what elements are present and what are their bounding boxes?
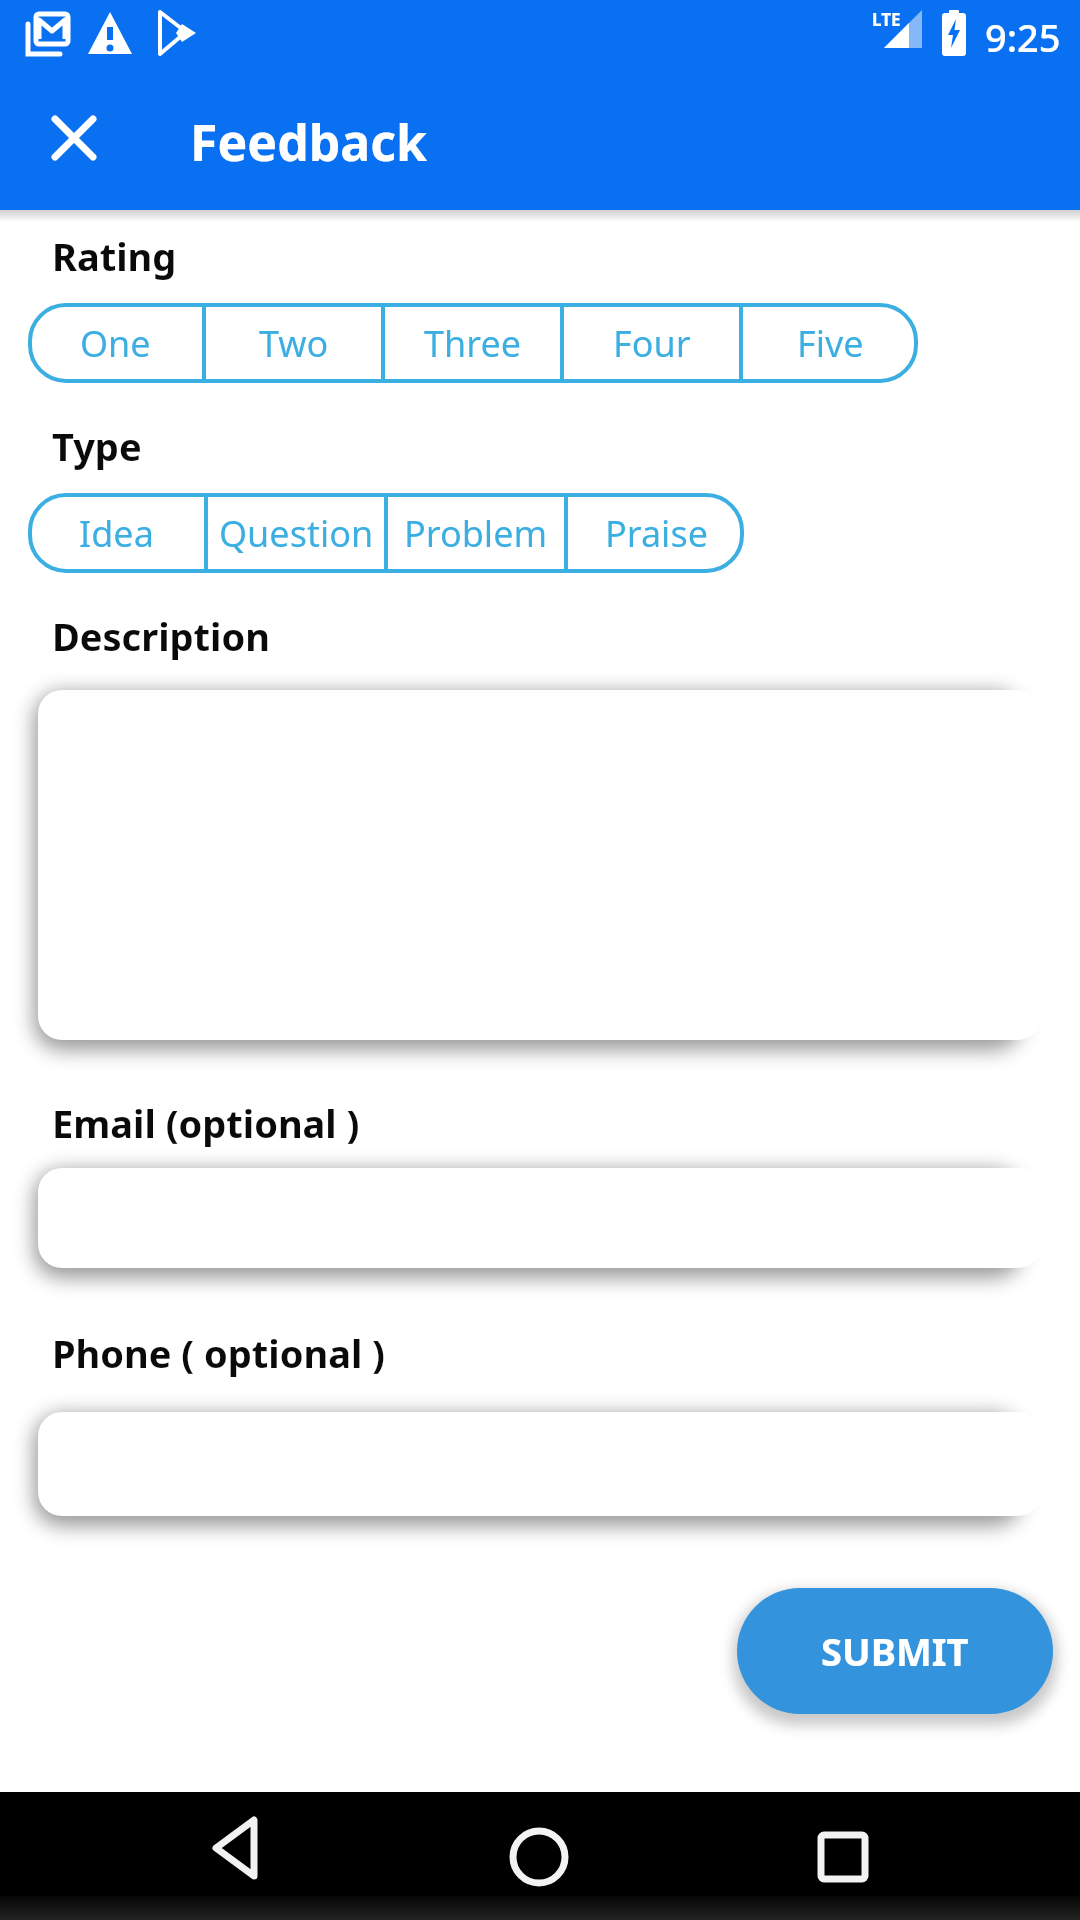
- button[interactable]: Idea: [28, 493, 204, 573]
- button[interactable]: Three: [385, 303, 560, 383]
- staticText: SUBMIT: [821, 1625, 969, 1677]
- staticText: LTE: [872, 8, 901, 31]
- button[interactable]: [803, 1817, 883, 1897]
- button[interactable]: [499, 1817, 579, 1897]
- button[interactable]: One: [28, 303, 202, 383]
- staticText: Problem: [404, 509, 548, 558]
- staticText: Five: [797, 319, 864, 368]
- staticText: Question: [219, 509, 374, 558]
- button[interactable]: Five: [743, 303, 918, 383]
- button[interactable]: Praise: [568, 493, 744, 573]
- button[interactable]: Four: [564, 303, 739, 383]
- button[interactable]: [50, 114, 98, 162]
- button[interactable]: SUBMIT: [737, 1588, 1053, 1714]
- staticText: Four: [613, 319, 691, 368]
- staticText: Two: [259, 319, 329, 368]
- staticText: Phone ( optional ): [52, 1327, 385, 1379]
- staticText: One: [80, 319, 151, 368]
- staticText: Rating: [52, 230, 177, 282]
- staticText: Description: [52, 610, 270, 662]
- button[interactable]: Two: [206, 303, 381, 383]
- staticText: Type: [52, 420, 142, 472]
- staticText: Feedback: [190, 108, 428, 176]
- staticText: 9:25: [985, 11, 1061, 63]
- button[interactable]: Question: [208, 493, 384, 573]
- staticText: Three: [424, 319, 522, 368]
- staticText: Email (optional ): [52, 1097, 360, 1149]
- button[interactable]: [200, 1814, 272, 1894]
- staticText: Idea: [79, 509, 154, 558]
- button[interactable]: Problem: [388, 493, 564, 573]
- staticText: Praise: [605, 509, 708, 558]
